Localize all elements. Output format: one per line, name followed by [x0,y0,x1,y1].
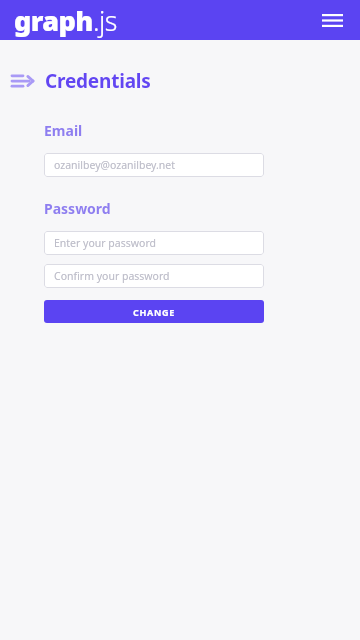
staticText: .js [93,2,117,39]
button[interactable]: Open menu [315,3,349,37]
button[interactable]: CHANGE [44,300,264,323]
staticText: Credentials [45,68,151,94]
button[interactable]: Confirm your password [44,264,264,288]
staticText: Password [44,199,111,218]
staticText: Enter your password [54,236,156,250]
staticText: Confirm your password [54,269,170,283]
button[interactable]: ozanilbey@ozanilbey.net [44,153,264,177]
button[interactable]: Enter your password [44,231,264,255]
staticText: graph [14,2,93,39]
staticText: CHANGE [133,306,175,318]
staticText: ozanilbey@ozanilbey.net [54,158,176,172]
staticText: Email [44,121,83,140]
